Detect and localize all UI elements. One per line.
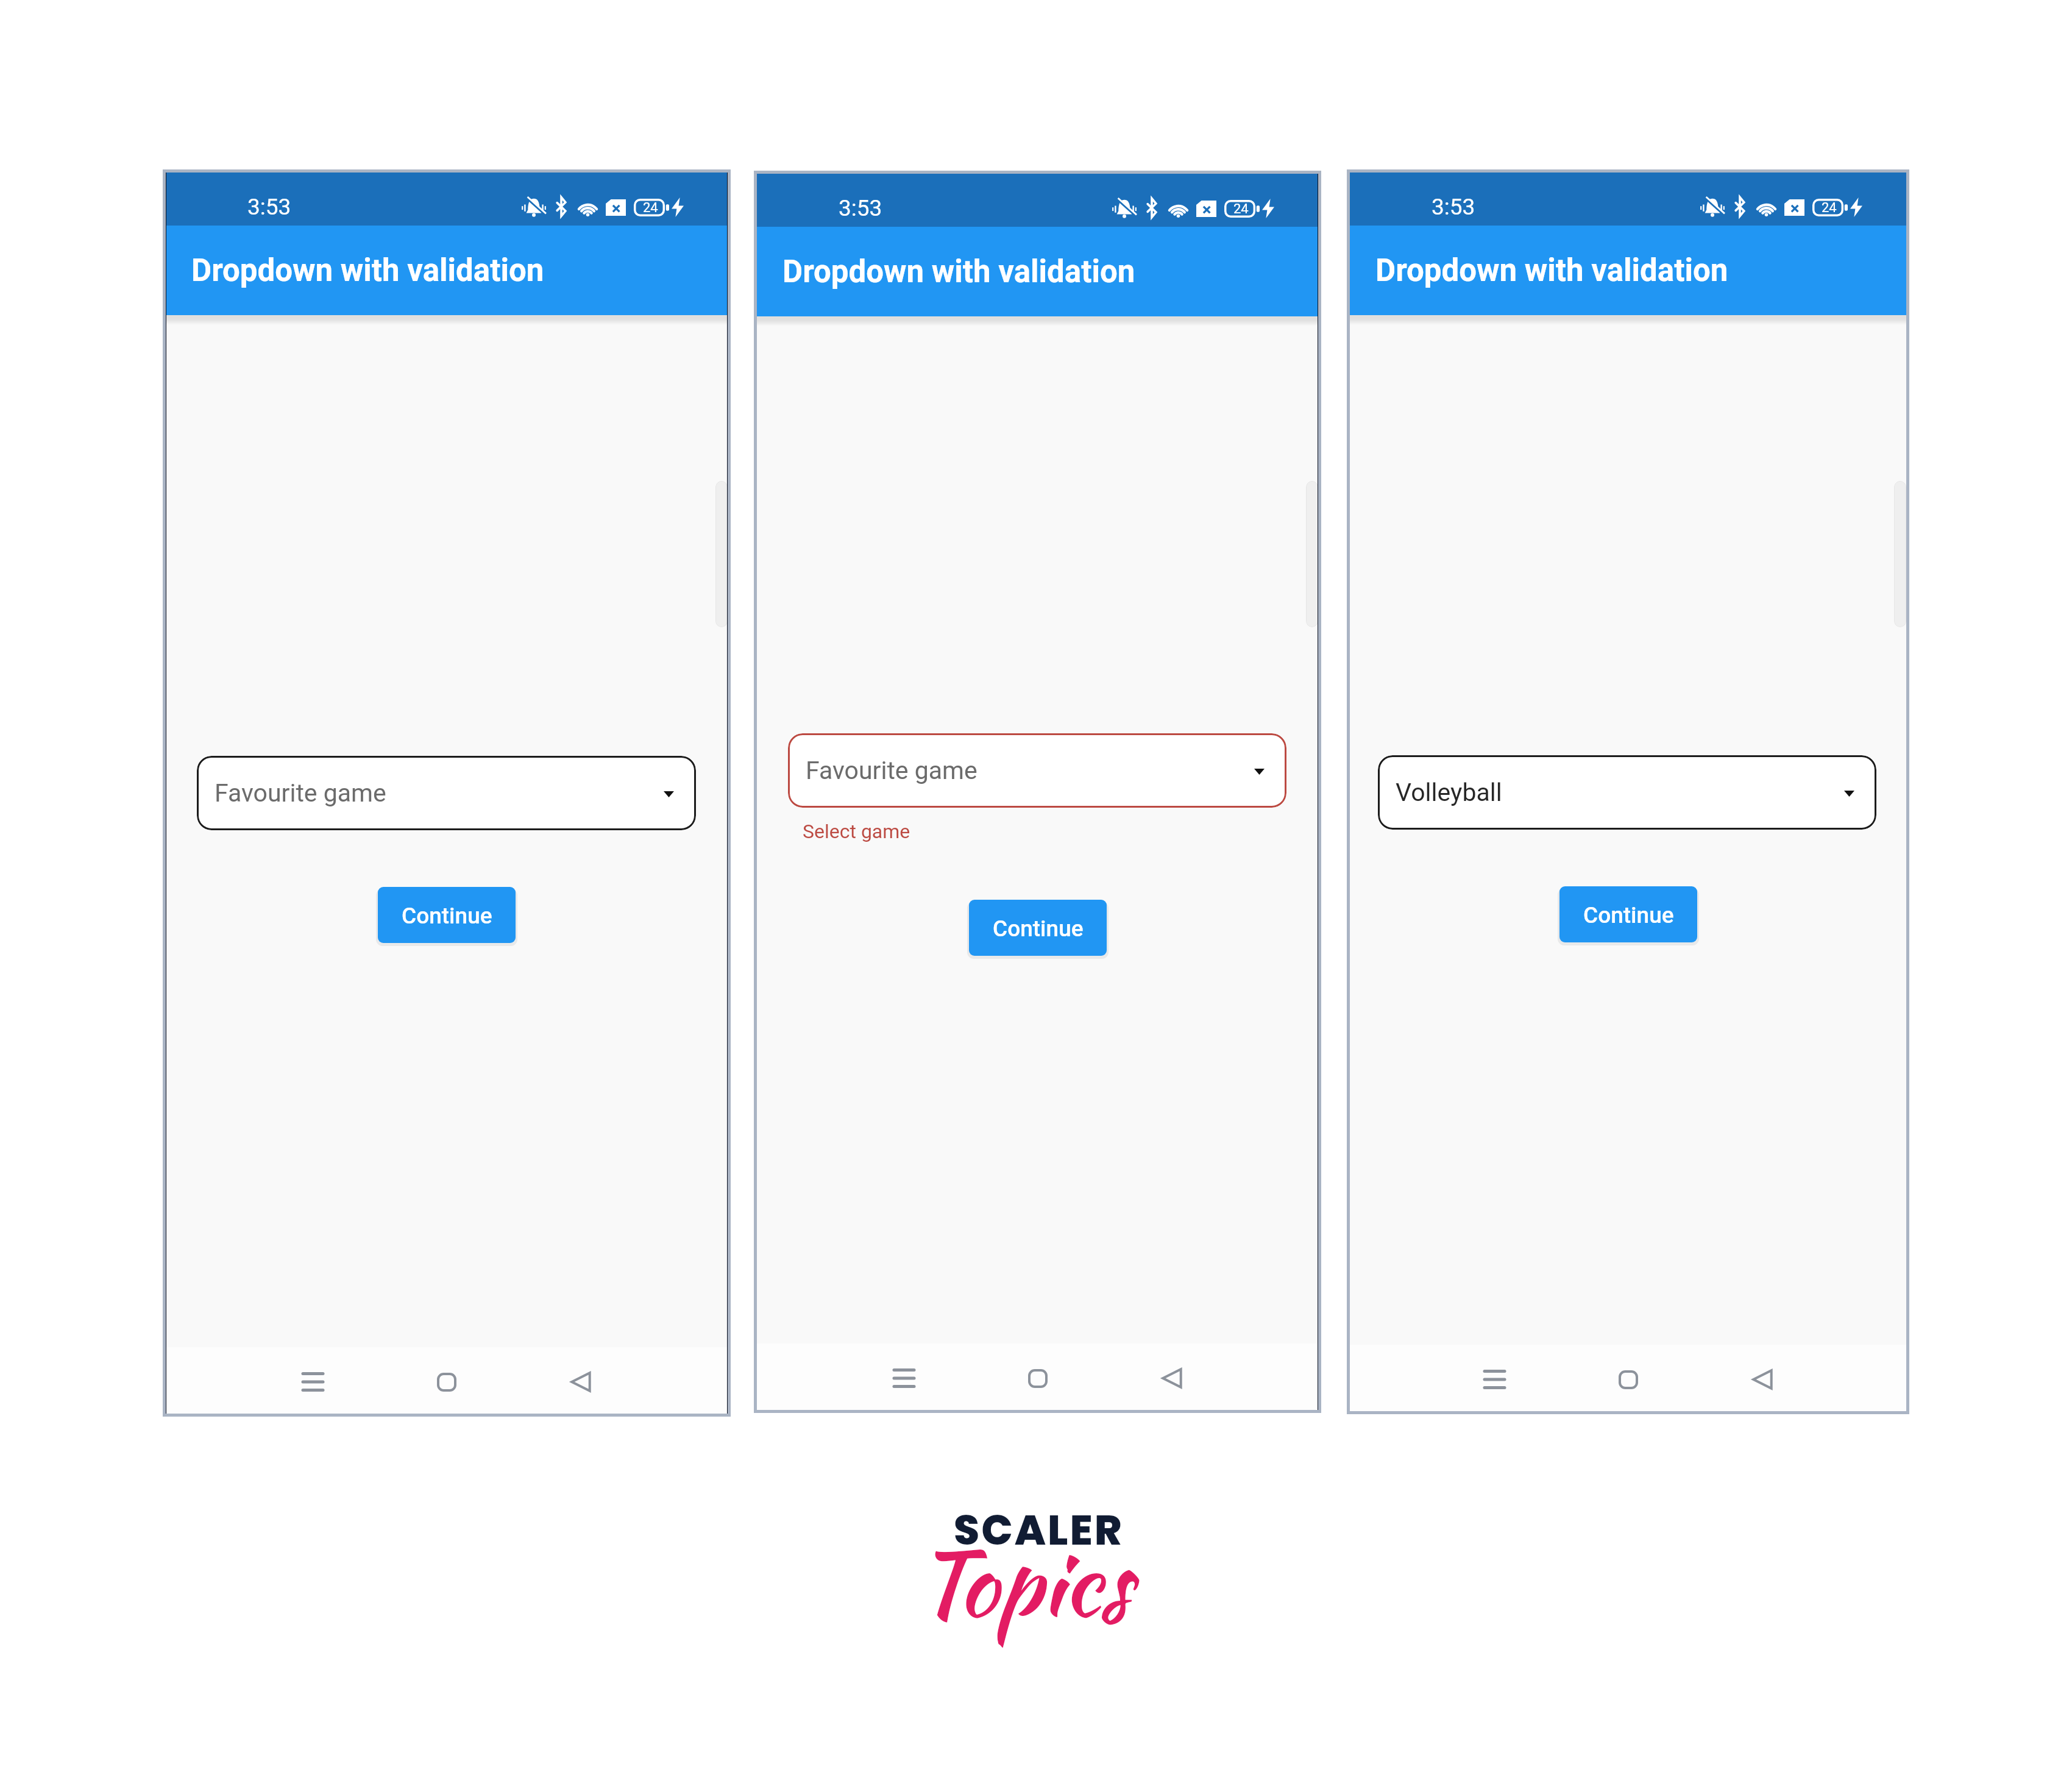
staticText: 3:53 [247, 194, 291, 220]
staticText: 24 [1233, 201, 1249, 217]
staticText: 3:53 [1432, 194, 1475, 220]
staticText: 24 [1822, 200, 1837, 216]
button[interactable]: Favourite game [788, 733, 1286, 808]
staticText: Volleyball [1396, 778, 1502, 807]
button[interactable]: Back [1105, 1343, 1239, 1413]
button[interactable]: Continue [969, 900, 1107, 956]
button[interactable]: Recent apps [1427, 1345, 1561, 1414]
button[interactable]: Favourite game [197, 756, 696, 830]
button[interactable]: Home [380, 1347, 514, 1417]
staticText: SCALER [954, 1501, 1124, 1557]
staticText: Dropdown with validation [191, 252, 544, 289]
button[interactable]: Home [971, 1343, 1105, 1413]
button[interactable]: Recent apps [837, 1343, 971, 1413]
button[interactable]: Back [1695, 1345, 1829, 1414]
staticText: Continue [1583, 902, 1674, 928]
staticText: Favourite game [806, 756, 977, 785]
staticText: Favourite game [215, 778, 386, 808]
staticText: Topics [916, 1519, 1131, 1648]
staticText: Dropdown with validation [1375, 252, 1728, 289]
staticText: Continue [402, 903, 492, 929]
staticText: Continue [993, 916, 1084, 942]
button[interactable]: Volleyball [1378, 755, 1876, 830]
button[interactable]: Recent apps [246, 1347, 380, 1417]
button[interactable]: Home [1561, 1345, 1695, 1414]
button[interactable]: Continue [1559, 886, 1697, 942]
staticText: Select game [803, 820, 910, 843]
button[interactable]: Continue [378, 887, 516, 943]
staticText: 24 [643, 200, 658, 216]
staticText: 3:53 [839, 195, 882, 221]
staticText: Dropdown with validation [782, 254, 1135, 290]
button[interactable]: Back [514, 1347, 648, 1417]
